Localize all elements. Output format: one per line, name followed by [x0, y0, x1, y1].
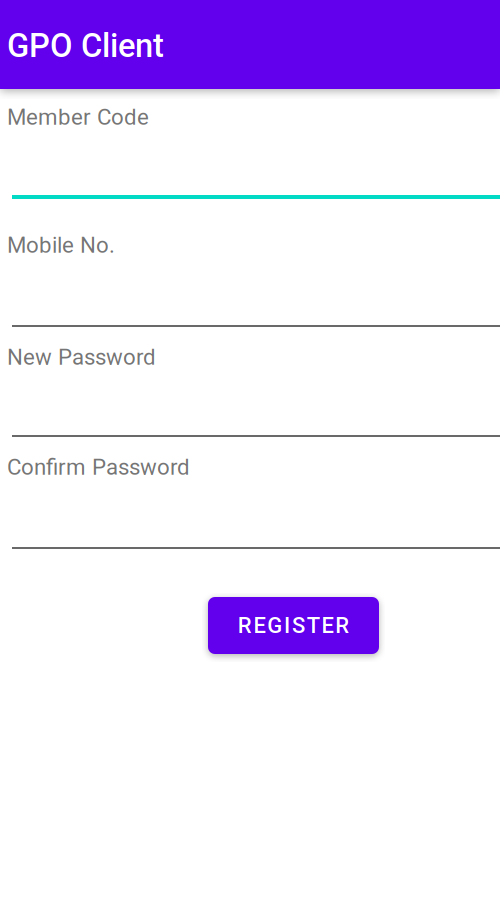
- staticText: REGISTER: [238, 613, 349, 638]
- staticText: GPO Client: [7, 27, 164, 65]
- staticText: Confirm Password: [7, 454, 190, 480]
- button[interactable]: REGISTER: [208, 597, 379, 654]
- staticText: Member Code: [7, 104, 149, 130]
- staticText: New Password: [7, 344, 156, 370]
- staticText: Mobile No.: [7, 232, 115, 258]
